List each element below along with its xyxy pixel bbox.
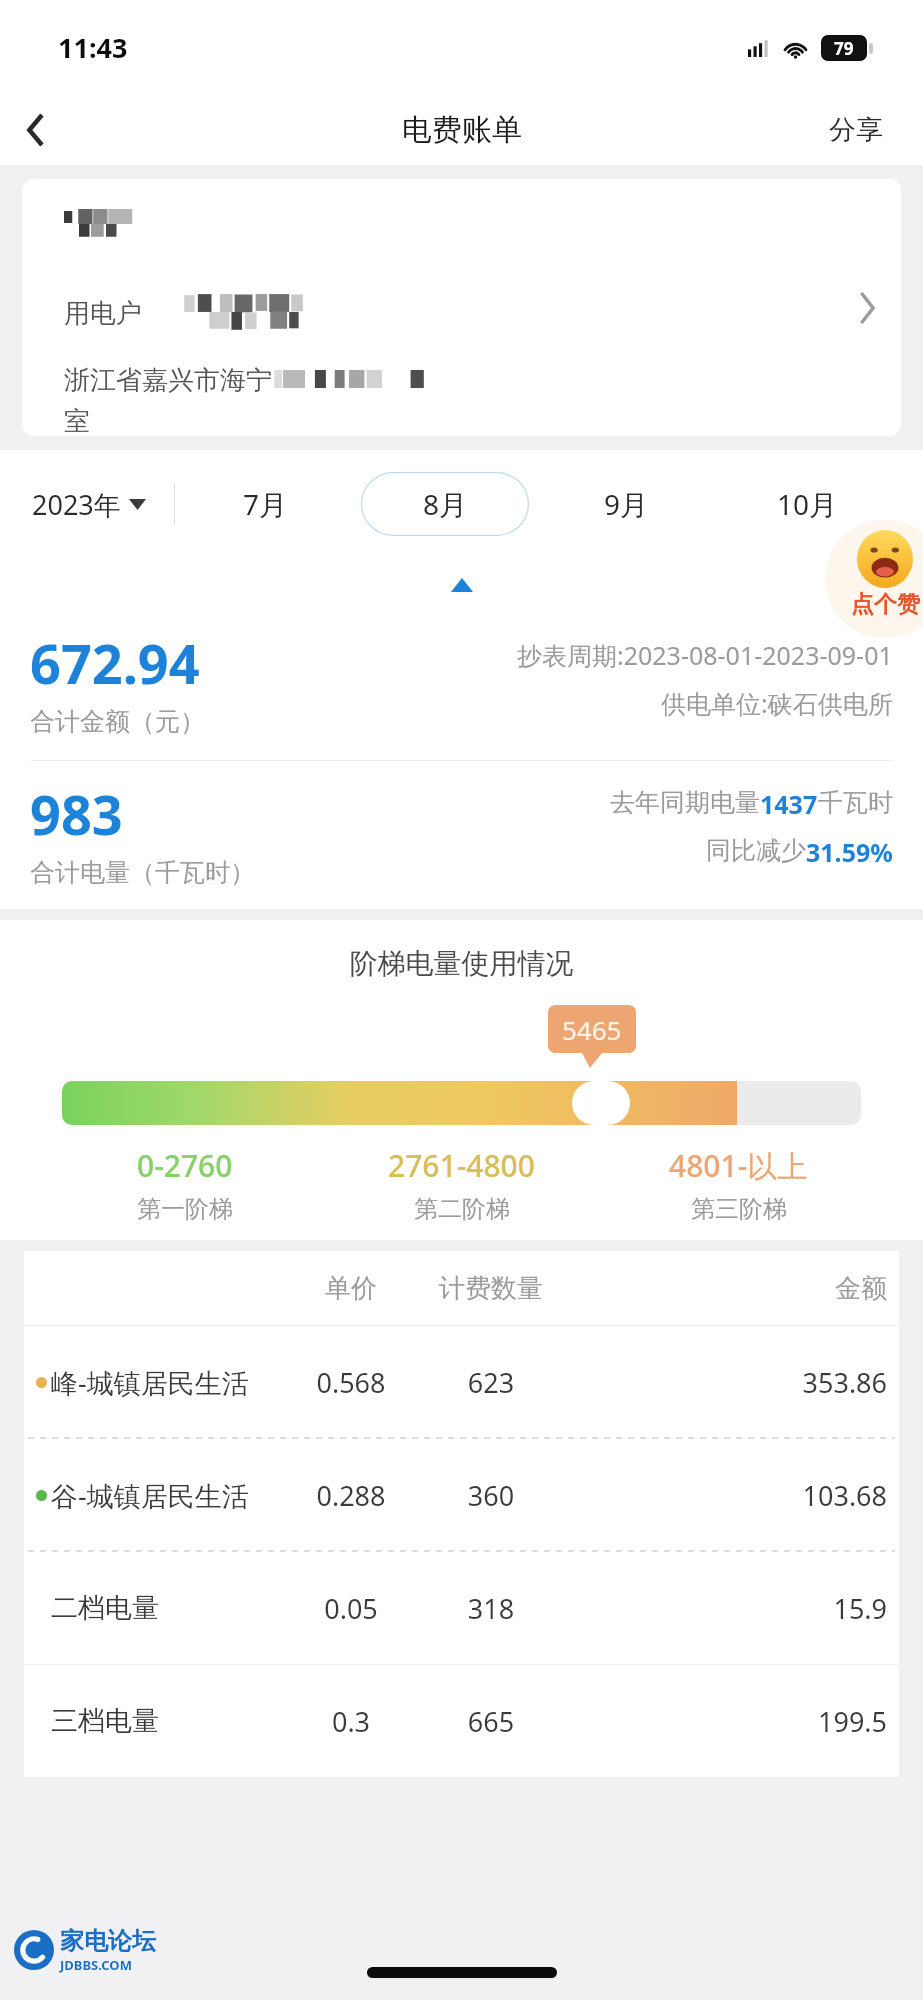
staticText: 2023年 <box>32 486 121 523</box>
staticText: 点个赞 <box>851 590 920 619</box>
button[interactable]: 点个赞 <box>825 520 923 638</box>
staticText: 浙江省嘉兴市海宁 <box>64 364 272 397</box>
staticText: 5465 <box>562 1012 622 1047</box>
staticText: 金额 <box>566 1272 887 1305</box>
staticText: 318 <box>416 1590 566 1627</box>
staticText: 分享 <box>829 113 883 147</box>
button[interactable]: 分享 <box>821 105 891 155</box>
staticText: 计费数量 <box>416 1272 566 1305</box>
staticText: 623 <box>416 1364 566 1401</box>
staticText: 谷-城镇居民生活 <box>51 1477 249 1514</box>
button[interactable]: Usage level <box>572 1081 630 1125</box>
staticText: 8月 <box>423 485 468 523</box>
button[interactable]: 谷-城镇居民生活 <box>24 1439 899 1551</box>
button[interactable]: 2023年 <box>26 480 152 529</box>
staticText: 抄表周期:2023-08-01-2023-09-01 <box>517 638 893 672</box>
staticText: 室 <box>64 405 90 436</box>
staticText: 9月 <box>604 485 649 523</box>
staticText: 983 <box>30 777 123 851</box>
staticText: JDBBS.COM <box>60 1956 132 1974</box>
staticText: 千瓦时 <box>818 787 893 818</box>
staticText: 79 <box>834 37 854 60</box>
staticText: 353.86 <box>566 1364 887 1401</box>
button[interactable]: Back <box>0 95 72 165</box>
staticText: 2761-4800 <box>388 1145 535 1186</box>
staticText: 合计电量（千瓦时） <box>30 857 255 888</box>
staticText: 31.59% <box>806 835 893 869</box>
staticText: 0.05 <box>286 1590 416 1627</box>
staticText: 0.3 <box>286 1703 416 1740</box>
button[interactable]: 10月 <box>732 472 882 536</box>
staticText: 7月 <box>243 485 288 523</box>
staticText: 672.94 <box>30 626 200 700</box>
button[interactable]: 8月 <box>361 472 529 536</box>
staticText: 0.568 <box>286 1364 416 1401</box>
staticText: 去年同期电量 <box>610 787 760 818</box>
button[interactable]: 二档电量 <box>24 1552 899 1664</box>
staticText: 1437 <box>760 787 818 821</box>
staticText: 同比减少 <box>706 835 806 866</box>
staticText: 阶梯电量使用情况 <box>0 946 923 981</box>
staticText: 103.68 <box>566 1477 887 1514</box>
staticText: 360 <box>416 1477 566 1514</box>
staticText: 峰-城镇居民生活 <box>51 1364 249 1401</box>
staticText: 第一阶梯 <box>137 1194 233 1224</box>
staticText: 199.5 <box>566 1703 887 1740</box>
staticText: 家电论坛 <box>60 1926 156 1956</box>
staticText: 三档电量 <box>51 1704 159 1738</box>
staticText: 二档电量 <box>51 1591 159 1625</box>
button[interactable]: 9月 <box>551 472 701 536</box>
button[interactable]: 峰-城镇居民生活 <box>24 1326 899 1438</box>
staticText: 电费账单 <box>402 111 522 149</box>
staticText: 第二阶梯 <box>414 1194 510 1224</box>
button[interactable]: 用电户 <box>22 179 901 436</box>
button[interactable]: 三档电量 <box>24 1665 899 1777</box>
staticText: 10月 <box>777 485 838 523</box>
staticText: 4801-以上 <box>669 1145 808 1186</box>
staticText: 合计金额（元） <box>30 706 205 737</box>
staticText: 供电单位:硖石供电所 <box>661 686 893 720</box>
staticText: 单价 <box>286 1272 416 1305</box>
button[interactable]: 7月 <box>190 472 340 536</box>
staticText: 用电户 <box>64 297 142 330</box>
staticText: 11:43 <box>58 29 128 66</box>
staticText: 0-2760 <box>137 1145 233 1186</box>
staticText: 0.288 <box>286 1477 416 1514</box>
staticText: 第三阶梯 <box>691 1194 787 1224</box>
staticText: 15.9 <box>566 1590 887 1627</box>
staticText: 665 <box>416 1703 566 1740</box>
